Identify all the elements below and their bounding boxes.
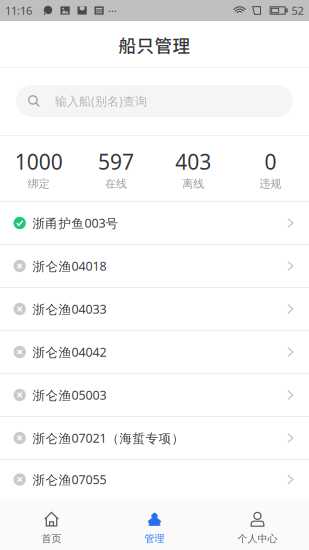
staticText: 浙仑渔07055 (32, 471, 106, 488)
staticText: 首页 (41, 532, 61, 545)
staticText: 在线 (105, 177, 127, 191)
button[interactable]: 首页 (0, 499, 103, 550)
staticText: 浙仑渔04042 (32, 343, 106, 360)
staticText: 个人中心 (237, 532, 277, 545)
staticText: 0 (264, 147, 276, 176)
staticText: 597 (98, 147, 134, 176)
button[interactable]: 个人中心 (206, 499, 309, 550)
button[interactable]: 浙仑渔04033 (0, 288, 309, 331)
button[interactable]: 浙仑渔07055 (0, 460, 309, 499)
staticText: 浙仑渔05003 (32, 386, 106, 403)
button[interactable]: 浙仑渔04018 (0, 245, 309, 288)
staticText: 52 (292, 3, 304, 18)
staticText: ··· (108, 3, 117, 18)
staticText: 浙甬护鱼003号 (32, 214, 118, 231)
staticText: 403 (175, 147, 211, 176)
button[interactable]: 浙仑渔04042 (0, 331, 309, 374)
staticText: 浙仑渔04033 (32, 300, 106, 317)
button[interactable]: 浙仑渔07021（海蜇专项） (0, 417, 309, 460)
staticText: 船只管理 (118, 32, 190, 57)
staticText: 离线 (182, 177, 204, 191)
staticText: 绑定 (28, 177, 50, 191)
staticText: 管理 (144, 532, 164, 545)
staticText: 11:16 (5, 3, 32, 18)
staticText: 违规 (259, 177, 281, 191)
staticText: 浙仑渔04018 (32, 257, 106, 274)
staticText: 1000 (15, 147, 63, 176)
button[interactable]: 管理 (103, 499, 206, 550)
button[interactable]: 浙甬护鱼003号 (0, 202, 309, 245)
staticText: 输入船(别名)查询 (55, 93, 147, 109)
staticText: 浙仑渔07021（海蜇专项） (32, 429, 184, 446)
button[interactable]: 浙仑渔05003 (0, 374, 309, 417)
